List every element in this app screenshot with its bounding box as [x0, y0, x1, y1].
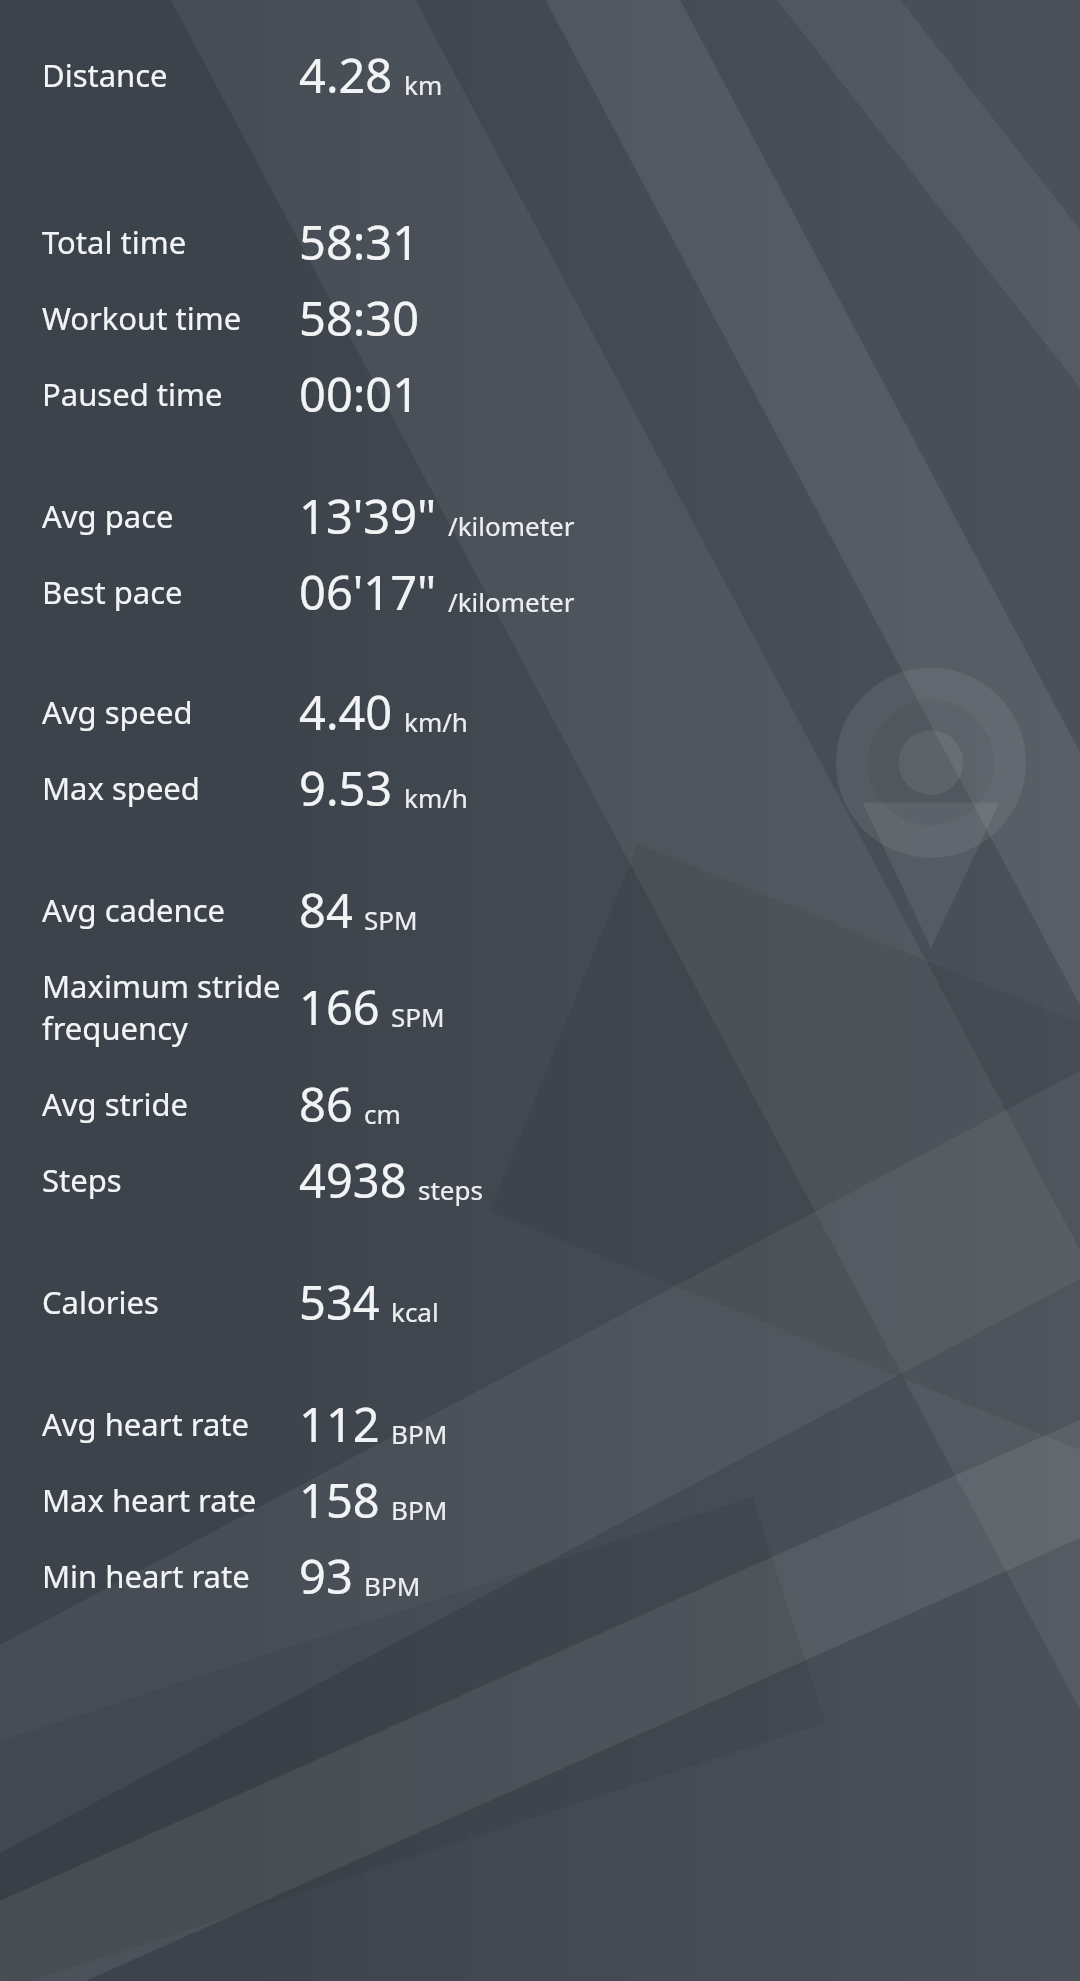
button[interactable]: Calories: [0, 1264, 1080, 1340]
staticText: SPM: [364, 902, 418, 937]
staticText: Max heart rate: [42, 1479, 257, 1521]
button[interactable]: Workout time: [0, 280, 1080, 356]
staticText: Best pace: [42, 571, 183, 613]
button[interactable]: Maximum stride frequency: [0, 948, 1080, 1066]
staticText: 9.53: [299, 756, 393, 820]
staticText: Paused time: [42, 373, 223, 415]
staticText: 00:01: [299, 362, 420, 426]
button[interactable]: Max heart rate: [0, 1462, 1080, 1538]
staticText: Min heart rate: [42, 1555, 250, 1597]
button[interactable]: Avg stride: [0, 1066, 1080, 1142]
staticText: Avg cadence: [42, 889, 226, 931]
staticText: 84: [299, 878, 353, 942]
button[interactable]: Avg heart rate: [0, 1386, 1080, 1462]
staticText: Steps: [42, 1159, 122, 1201]
staticText: Total time: [42, 221, 187, 263]
staticText: 158: [299, 1468, 380, 1532]
button[interactable]: Avg cadence: [0, 872, 1080, 948]
staticText: 166: [299, 975, 380, 1039]
staticText: Avg pace: [42, 495, 174, 537]
button[interactable]: Avg pace: [0, 478, 1080, 554]
staticText: 06'17": [299, 560, 437, 624]
staticText: cm: [364, 1096, 401, 1131]
staticText: Avg stride: [42, 1083, 189, 1125]
staticText: km/h: [404, 780, 468, 815]
staticText: Maximum stride frequency: [42, 965, 281, 1049]
staticText: /kilometer: [448, 508, 575, 543]
button[interactable]: Total time: [0, 204, 1080, 280]
staticText: BPM: [364, 1568, 421, 1603]
staticText: Distance: [42, 54, 168, 96]
staticText: 4.40: [299, 680, 393, 744]
staticText: km/h: [404, 704, 468, 739]
button[interactable]: Paused time: [0, 356, 1080, 432]
staticText: SPM: [391, 999, 445, 1034]
staticText: 58:30: [299, 286, 420, 350]
staticText: 58:31: [299, 210, 420, 274]
staticText: 534: [299, 1270, 380, 1334]
button[interactable]: Max speed: [0, 750, 1080, 826]
staticText: BPM: [391, 1416, 448, 1451]
button[interactable]: Steps: [0, 1142, 1080, 1218]
staticText: Workout time: [42, 297, 242, 339]
staticText: kcal: [391, 1294, 439, 1329]
staticText: 13'39": [299, 484, 437, 548]
staticText: Avg heart rate: [42, 1403, 250, 1445]
staticText: 4938: [299, 1148, 407, 1212]
button[interactable]: Distance: [0, 34, 1080, 116]
button[interactable]: Avg speed: [0, 674, 1080, 750]
staticText: 86: [299, 1072, 353, 1136]
staticText: steps: [418, 1172, 483, 1207]
staticText: 93: [299, 1544, 353, 1608]
staticText: Max speed: [42, 767, 200, 809]
staticText: Avg speed: [42, 691, 193, 733]
staticText: BPM: [391, 1492, 448, 1527]
staticText: /kilometer: [448, 584, 575, 619]
staticText: 112: [299, 1392, 380, 1456]
button[interactable]: Min heart rate: [0, 1538, 1080, 1614]
staticText: 4.28: [299, 43, 393, 107]
button[interactable]: Best pace: [0, 554, 1080, 630]
staticText: Calories: [42, 1281, 159, 1323]
staticText: km: [404, 67, 443, 102]
